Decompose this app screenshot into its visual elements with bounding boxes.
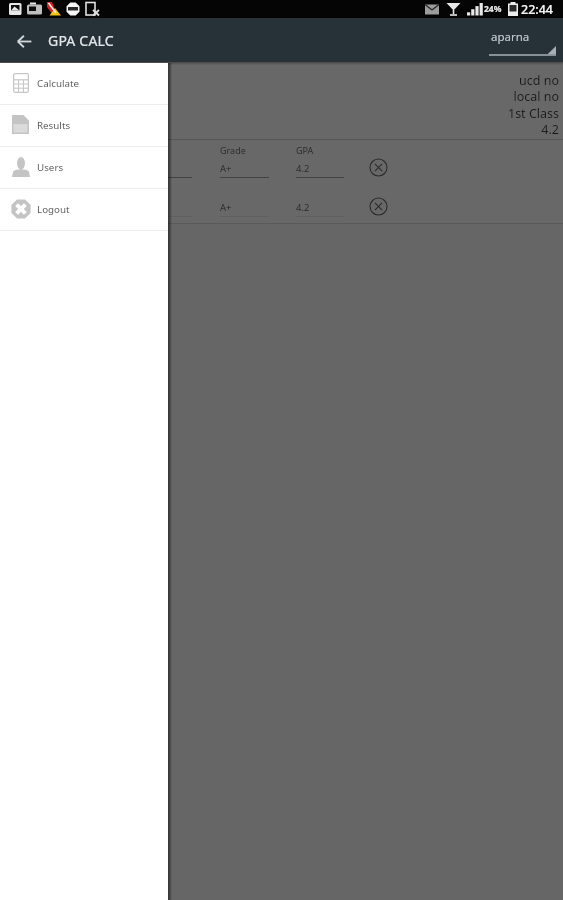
staticText: A+ [220, 201, 232, 214]
button[interactable]: Logout [0, 189, 168, 230]
staticText: Theory of Computation Pa [40, 201, 158, 214]
staticText: GPA CALC [48, 31, 114, 50]
button[interactable]: Delete row [364, 153, 394, 183]
button[interactable]: Results [0, 105, 168, 146]
staticText: Theory of Computation Pa [40, 162, 158, 175]
staticText: Grade [220, 144, 246, 156]
staticText: Calculate [37, 77, 80, 90]
button[interactable]: Users [0, 147, 168, 188]
staticText: 1st Class [507, 105, 559, 122]
staticText: 4.2 [296, 201, 310, 214]
staticText: Logout [37, 203, 70, 216]
staticText: ucd no [519, 72, 559, 89]
staticText: A+ [220, 162, 232, 175]
staticText: local no [513, 88, 559, 105]
staticText: Module [40, 144, 73, 156]
staticText: Users [37, 161, 64, 174]
staticText: GPA [296, 144, 314, 156]
staticText: 22:44 [521, 1, 554, 18]
button[interactable]: Calculate [0, 63, 168, 104]
staticText: Results [37, 119, 71, 132]
staticText: 24% [484, 3, 502, 15]
staticText: 4.2 [541, 121, 559, 138]
button[interactable]: Delete row [364, 192, 394, 222]
button[interactable]: Back [0, 18, 46, 62]
button[interactable]: Select user [489, 18, 556, 62]
staticText: 4.2 [296, 162, 310, 175]
staticText: aparna [491, 29, 530, 45]
